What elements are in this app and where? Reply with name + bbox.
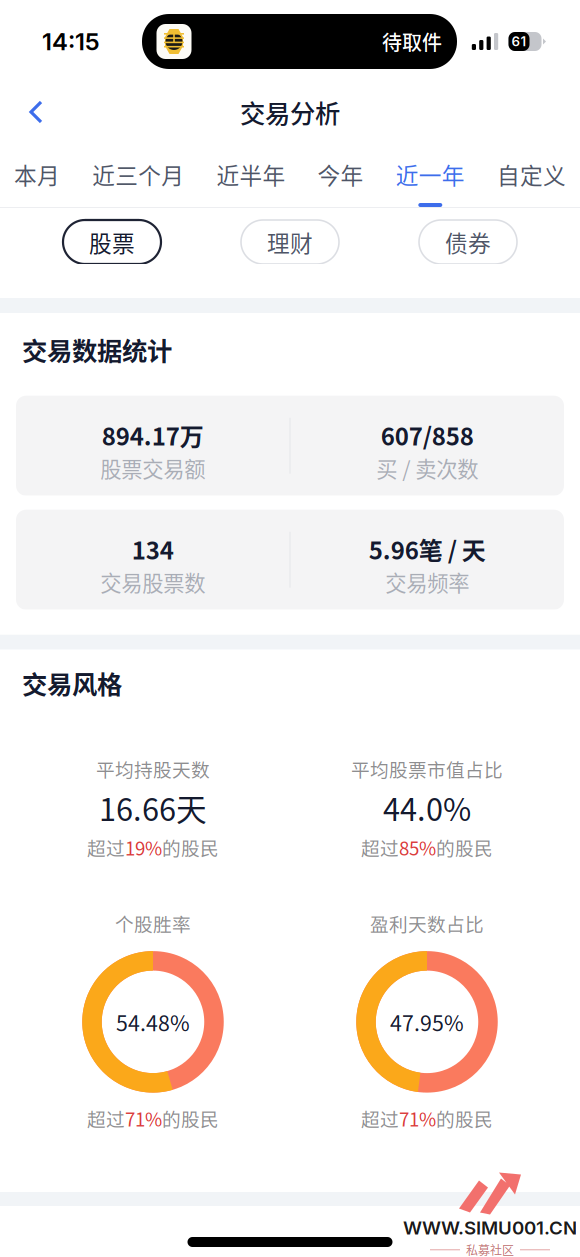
staticText: 的股民 <box>162 834 219 861</box>
staticText: 61 <box>511 33 526 49</box>
staticText: 买 / 卖次数 <box>376 452 478 483</box>
staticText: 的股民 <box>436 834 493 861</box>
button[interactable]: 本月 <box>14 141 60 207</box>
staticText: 超过 <box>361 834 399 861</box>
staticText: 待取件 <box>382 27 442 56</box>
staticText: WWW.SIMU001.CN <box>403 1216 577 1239</box>
staticText: 超过 <box>87 834 125 861</box>
staticText: 14:15 <box>42 27 100 56</box>
staticText: 超过 <box>361 1105 399 1132</box>
button[interactable]: 近三个月 <box>92 141 184 207</box>
button[interactable]: 自定义 <box>497 141 566 207</box>
staticText: 盈利天数占比 <box>370 910 484 937</box>
staticText: 交易频率 <box>385 566 469 597</box>
staticText: 交易股票数 <box>100 566 205 597</box>
staticText: 交易风格 <box>22 665 122 701</box>
staticText: 44.0% <box>383 785 471 830</box>
staticText: 894.17万 <box>102 418 204 452</box>
staticText: 85% <box>399 834 436 861</box>
button[interactable]: 近一年 <box>396 141 465 207</box>
staticText: 47.95% <box>390 1006 464 1037</box>
staticText: 超过 <box>87 1105 125 1132</box>
staticText: 的股民 <box>162 1105 219 1132</box>
staticText: 交易数据统计 <box>22 331 172 368</box>
staticText: 134 <box>132 532 174 566</box>
staticText: 5.96笔 / 天 <box>369 532 486 566</box>
button[interactable]: 理财 <box>241 220 339 264</box>
staticText: 71% <box>399 1105 436 1132</box>
staticText: 平均持股天数 <box>96 755 210 782</box>
button[interactable]: 债券 <box>419 220 517 264</box>
staticText: 今年 <box>318 158 364 191</box>
staticText: 71% <box>125 1105 162 1132</box>
button[interactable]: 今年 <box>318 141 364 207</box>
staticText: 私募社区 <box>466 1241 514 1257</box>
staticText: 股票 <box>89 226 135 258</box>
staticText: 股票交易额 <box>100 452 205 483</box>
staticText: 本月 <box>14 158 60 191</box>
staticText: 平均股票市值占比 <box>351 755 503 782</box>
staticText: 交易分析 <box>240 94 340 130</box>
staticText: 近半年 <box>216 158 285 191</box>
staticText: 债券 <box>445 226 491 258</box>
staticText: 54.48% <box>116 1006 190 1037</box>
staticText: 16.66天 <box>99 785 207 830</box>
button[interactable]: 股票 <box>63 220 161 264</box>
staticText: 理财 <box>267 226 313 258</box>
staticText: 的股民 <box>436 1105 493 1132</box>
staticText: 个股胜率 <box>115 910 191 937</box>
staticText: 近一年 <box>396 158 465 191</box>
staticText: 607/858 <box>381 418 474 452</box>
staticText: 自定义 <box>497 158 566 191</box>
button[interactable]: 返回 <box>0 83 72 141</box>
staticText: 近三个月 <box>92 158 184 191</box>
button[interactable]: 近半年 <box>216 141 285 207</box>
staticText: 19% <box>125 834 162 861</box>
